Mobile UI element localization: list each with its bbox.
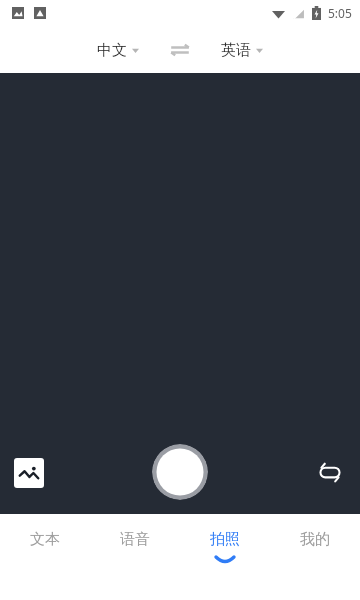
staticText: 我的 [300,530,330,549]
staticText: 英语 [221,41,251,60]
button[interactable]: 语音 [90,514,180,600]
button[interactable]: 文本 [0,514,90,600]
button[interactable]: Switch camera [314,456,346,488]
staticText: 文本 [30,530,60,549]
button[interactable]: 中文 [93,37,143,64]
button[interactable]: 英语 [217,37,267,64]
button[interactable]: 拍照 [180,514,270,600]
button[interactable]: Take photo [152,444,208,500]
staticText: 中文 [97,41,127,60]
button[interactable]: Gallery [14,458,44,488]
button[interactable]: 我的 [270,514,360,600]
staticText: 5:05 [328,5,352,21]
staticText: 语音 [120,530,150,549]
button[interactable]: Swap languages [165,35,195,65]
staticText: 拍照 [210,530,240,549]
